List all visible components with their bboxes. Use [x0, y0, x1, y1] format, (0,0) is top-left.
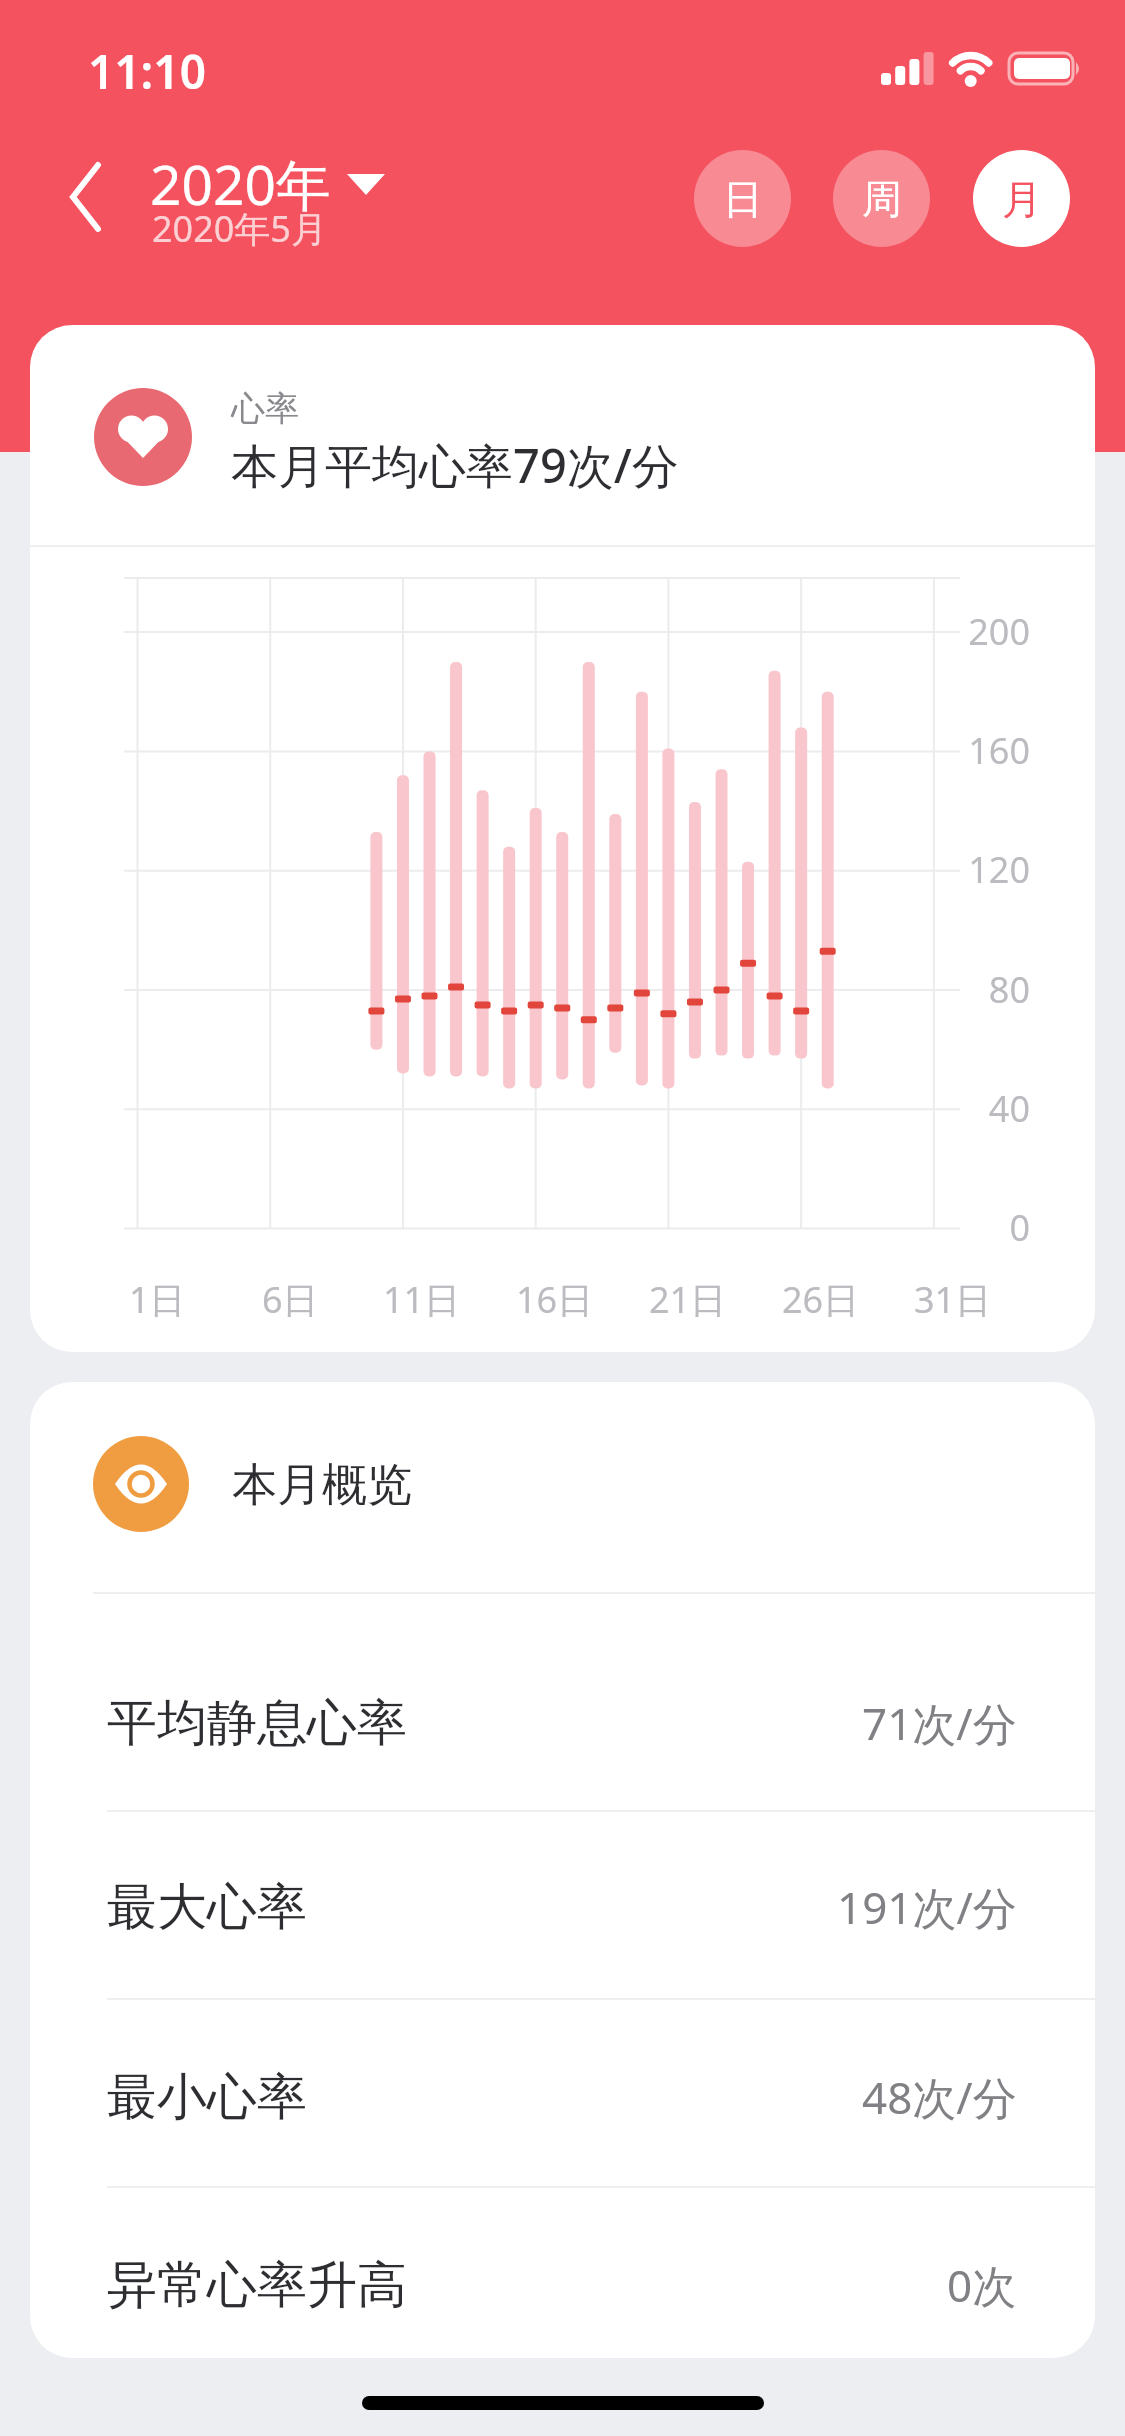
- button[interactable]: 日: [694, 150, 791, 247]
- staticText: 2020年5月: [152, 204, 327, 253]
- button[interactable]: 异常心率升高: [107, 2230, 1017, 2340]
- staticText: 6日: [262, 1275, 319, 1324]
- staticText: 21日: [649, 1275, 727, 1324]
- staticText: 本月平均心率79次/分: [231, 433, 679, 497]
- staticText: 周: [862, 174, 902, 224]
- button[interactable]: 平均静息心率: [107, 1668, 1017, 1778]
- staticText: 2020年: [150, 146, 331, 221]
- staticText: 48次/分: [862, 2067, 1017, 2127]
- staticText: 40: [988, 1084, 1030, 1133]
- staticText: 平均静息心率: [107, 1692, 407, 1755]
- staticText: 191次/分: [837, 1877, 1017, 1937]
- staticText: 最小心率: [107, 2066, 307, 2129]
- staticText: 1日: [129, 1275, 186, 1324]
- staticText: 26日: [782, 1275, 860, 1324]
- staticText: 80: [988, 965, 1030, 1014]
- staticText: 16日: [516, 1275, 594, 1324]
- staticText: 120: [968, 845, 1030, 894]
- staticText: 200: [968, 607, 1030, 656]
- staticText: 11日: [383, 1275, 461, 1324]
- staticText: 最大心率: [107, 1876, 307, 1939]
- staticText: 0次: [947, 2255, 1017, 2315]
- staticText: 心率: [231, 387, 299, 430]
- button[interactable]: 周: [833, 150, 930, 247]
- button[interactable]: 最大心率: [107, 1852, 1017, 1962]
- button[interactable]: 最小心率: [107, 2042, 1017, 2152]
- staticText: 异常心率升高: [107, 2254, 407, 2317]
- staticText: 日: [723, 174, 763, 224]
- staticText: 本月概览: [232, 1457, 412, 1514]
- staticText: 160: [968, 726, 1030, 775]
- button[interactable]: 月: [973, 150, 1070, 247]
- staticText: 月: [1002, 174, 1042, 224]
- button[interactable]: 2020年: [150, 146, 385, 221]
- staticText: 31日: [914, 1275, 992, 1324]
- staticText: 11:10: [88, 40, 206, 103]
- staticText: 71次/分: [862, 1693, 1017, 1753]
- staticText: 0: [1009, 1203, 1030, 1252]
- button[interactable]: [60, 150, 110, 250]
